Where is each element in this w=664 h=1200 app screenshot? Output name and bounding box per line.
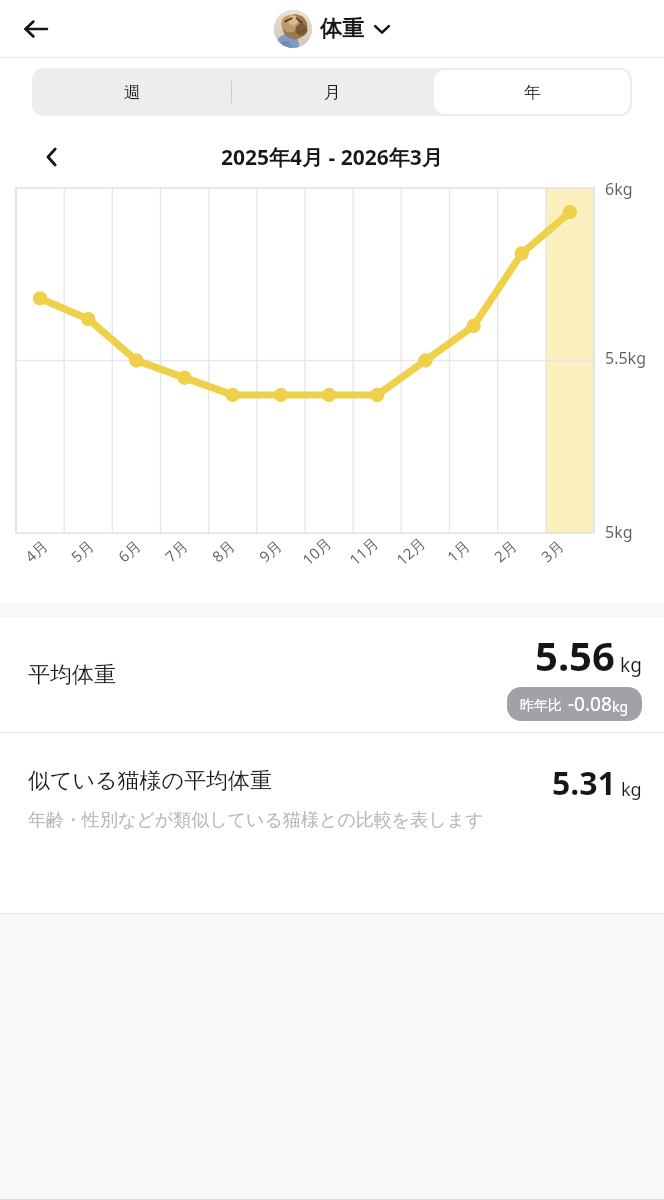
button[interactable]: 週	[32, 68, 232, 116]
staticText: 5.31	[552, 761, 616, 805]
staticText: 年	[524, 82, 541, 103]
staticText: -0.08	[568, 691, 612, 717]
staticText: 4月	[20, 535, 52, 566]
staticText: 年齢・性別などが類似している猫様との比較を表します	[28, 809, 484, 832]
staticText: 昨年比	[520, 697, 562, 715]
staticText: 12月	[391, 532, 429, 569]
staticText: 月	[324, 82, 341, 103]
button[interactable]: 平均体重	[0, 617, 664, 732]
staticText: 6kg	[605, 178, 633, 200]
staticText: 週	[124, 82, 141, 103]
staticText: 5月	[66, 535, 98, 566]
staticText: 平均体重	[28, 661, 116, 689]
button[interactable]: 年	[434, 70, 630, 114]
staticText: 2月	[489, 535, 521, 566]
button[interactable]: Back	[14, 7, 58, 51]
staticText: 7月	[160, 535, 192, 566]
staticText: 似ている猫様の平均体重	[28, 767, 273, 795]
staticText: 6月	[113, 535, 145, 566]
button[interactable]: 似ている猫様の平均体重	[0, 733, 664, 913]
staticText: kg	[612, 697, 629, 716]
staticText: 体重	[320, 15, 364, 43]
staticText: 3月	[536, 535, 568, 566]
staticText: 2025年4月 - 2026年3月	[221, 143, 443, 172]
staticText: 1月	[442, 535, 474, 566]
button[interactable]: Previous period	[32, 137, 72, 177]
staticText: 5kg	[605, 521, 633, 543]
staticText: kg	[621, 777, 642, 802]
staticText: kg	[620, 652, 642, 678]
staticText: 8月	[207, 535, 239, 566]
staticText: 10月	[297, 532, 335, 569]
staticText: 11月	[344, 532, 382, 569]
button[interactable]: 月	[232, 68, 432, 116]
staticText: 9月	[254, 535, 286, 566]
staticText: 5.56	[535, 628, 615, 682]
staticText: 5.5kg	[605, 347, 646, 369]
button[interactable]: 体重	[270, 8, 395, 50]
